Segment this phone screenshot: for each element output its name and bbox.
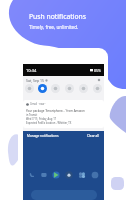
- button[interactable]: Quick setting: [79, 84, 88, 93]
- staticText: in Transit: [26, 113, 38, 117]
- button[interactable]: App 6: [91, 171, 99, 179]
- button[interactable]: Quick setting: [38, 84, 47, 93]
- staticText: Gmail · now ·: [30, 102, 46, 106]
- button[interactable]: App 2: [40, 171, 48, 179]
- button[interactable]: Gmail · now ·: [23, 100, 104, 128]
- staticText: Your package 'Smartphone...' from Amazon: [26, 109, 85, 113]
- staticText: 10:34: [26, 68, 37, 73]
- button[interactable]: Clear all: [87, 134, 100, 138]
- button[interactable]: App 3: [52, 171, 60, 179]
- button[interactable]: App 5: [78, 171, 86, 179]
- button[interactable]: Quick setting: [93, 84, 102, 93]
- staticText: Push notifications: [29, 12, 86, 21]
- button[interactable]: Quick setting: [25, 84, 34, 93]
- button[interactable]: Manage notifications: [27, 134, 59, 138]
- button[interactable]: Quick setting: [51, 84, 60, 93]
- staticText: Expected FedEx location - Whittier, TX: [26, 121, 72, 125]
- staticText: Timely, free, unlimited.: [29, 24, 79, 30]
- staticText: Wed 7/15, Friday, Aug 17: [26, 117, 57, 121]
- button[interactable]: App 1: [28, 171, 36, 179]
- staticText: Sat, Sep 15: [26, 78, 44, 83]
- button[interactable]: App 4: [65, 171, 73, 179]
- staticText: 85%: [94, 68, 101, 73]
- button[interactable]: Quick setting: [65, 84, 74, 93]
